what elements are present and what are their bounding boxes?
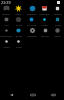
staticText: 23:39 <box>1 0 11 5</box>
button[interactable]: Maps <box>0 38 12 49</box>
staticText: Clock <box>16 23 22 26</box>
button[interactable]: Browser <box>25 5 38 16</box>
button[interactable]: People <box>0 5 12 16</box>
staticText: Calendar <box>39 12 50 15</box>
staticText: Music <box>54 34 61 37</box>
staticText: People <box>2 12 10 15</box>
button[interactable]: Recents <box>43 90 64 100</box>
staticText: Drive <box>55 23 61 26</box>
staticText: Voice <box>16 45 22 48</box>
button[interactable]: Calendar <box>38 5 51 16</box>
button[interactable]: Drive <box>51 16 64 27</box>
button[interactable]: Home <box>22 90 43 100</box>
button[interactable]: Calc <box>0 16 12 27</box>
staticText: Earth <box>16 34 22 37</box>
staticText: Gallery <box>41 34 49 37</box>
button[interactable]: Gallery <box>38 27 51 38</box>
button[interactable]: Back <box>0 90 22 100</box>
button[interactable]: Clock <box>12 16 25 27</box>
button[interactable]: Voice <box>12 38 25 49</box>
button[interactable]: Downloads <box>0 27 12 38</box>
button[interactable]: Chrome <box>25 16 38 27</box>
staticText: Maps <box>3 45 10 48</box>
button[interactable]: Music <box>51 27 64 38</box>
staticText: Browser <box>27 12 37 15</box>
button[interactable]: Camera <box>51 5 64 16</box>
staticText: Settings <box>27 34 37 37</box>
staticText: Camera <box>53 12 62 15</box>
staticText: Cloud <box>41 23 48 26</box>
staticText: Calc <box>4 23 9 26</box>
button[interactable]: Maps <box>12 5 25 16</box>
staticText: Maps <box>15 12 22 15</box>
staticText: Downloads <box>0 34 12 38</box>
button[interactable]: Settings <box>25 27 38 38</box>
staticText: Chrome <box>27 23 36 26</box>
button[interactable]: Cloud <box>38 16 51 27</box>
button[interactable]: Earth <box>12 27 25 38</box>
